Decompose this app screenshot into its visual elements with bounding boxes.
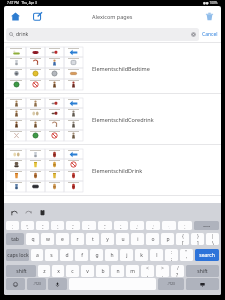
staticText: k	[140, 252, 143, 259]
button[interactable]: y	[101, 233, 114, 245]
staticText: w	[46, 236, 50, 243]
staticText: ElementschildCoredrink	[92, 116, 154, 123]
button[interactable]: &	[98, 221, 112, 230]
button[interactable]: .?123	[158, 278, 184, 290]
button[interactable]: Edit	[30, 9, 45, 24]
staticText: b	[101, 268, 105, 275]
staticText: s	[50, 252, 53, 259]
button[interactable]: p	[161, 233, 174, 245]
staticText: [	[182, 240, 184, 245]
button[interactable]: d	[60, 249, 73, 261]
button[interactable]: h	[105, 249, 118, 261]
staticText: <	[146, 265, 149, 272]
button[interactable]: search	[195, 249, 219, 261]
staticText: f	[81, 252, 83, 259]
button[interactable]: Cancel	[202, 31, 218, 38]
button[interactable]: +	[178, 221, 192, 230]
button[interactable]: delete	[194, 221, 219, 230]
staticText: 3	[42, 226, 44, 229]
button[interactable]: @	[21, 221, 34, 230]
button[interactable]: j	[120, 249, 133, 261]
button[interactable]: r	[71, 233, 84, 245]
button[interactable]: (	[130, 221, 144, 230]
staticText: j	[126, 252, 128, 259]
button[interactable]: u	[116, 233, 129, 245]
button[interactable]: %	[66, 221, 80, 230]
staticText: a	[36, 252, 39, 259]
button[interactable]: a	[31, 249, 43, 261]
staticText: search	[199, 252, 215, 259]
button[interactable]: s	[45, 249, 58, 261]
button[interactable]: i	[131, 233, 144, 245]
button[interactable]: .?123	[27, 278, 46, 290]
staticText: %	[72, 223, 74, 226]
button[interactable]: o	[146, 233, 159, 245]
button[interactable]: #	[36, 221, 49, 230]
staticText: u	[121, 236, 125, 243]
staticText: 2	[27, 226, 29, 229]
button[interactable]: ElementschildDrink	[4, 145, 221, 195]
button[interactable]: m	[126, 265, 139, 277]
staticText: m	[130, 268, 135, 275]
staticText: 6	[88, 226, 90, 229]
button[interactable]: shift	[6, 265, 36, 277]
button[interactable]: >	[156, 265, 169, 277]
staticText: p	[166, 236, 170, 243]
button[interactable]	[186, 278, 219, 290]
button[interactable]: shift	[186, 265, 219, 277]
button[interactable]: ElementschildBedtime	[4, 43, 221, 93]
staticText: ;	[171, 256, 173, 261]
button[interactable]: w	[41, 233, 54, 245]
button[interactable]: x	[52, 265, 64, 277]
staticText: delete	[203, 224, 210, 227]
staticText: ?	[176, 272, 179, 277]
button[interactable]	[6, 278, 25, 290]
button[interactable]: b	[96, 265, 109, 277]
button[interactable]: /	[171, 265, 184, 277]
button[interactable]: !	[6, 221, 19, 230]
button[interactable]: Paste	[38, 208, 47, 217]
staticText: Cancel	[202, 31, 218, 38]
staticText: 5	[72, 226, 74, 229]
button[interactable]: *	[114, 221, 128, 230]
button[interactable]: Home	[8, 9, 23, 24]
button[interactable]: v	[81, 265, 94, 277]
button[interactable]: <	[141, 265, 154, 277]
button[interactable]: :	[165, 249, 178, 261]
button[interactable]: {	[176, 233, 189, 245]
staticText: +	[184, 223, 186, 226]
button[interactable]: n	[111, 265, 124, 277]
button[interactable]: k	[135, 249, 148, 261]
button[interactable]: caps lock	[6, 249, 29, 261]
button[interactable]: tab	[6, 233, 24, 245]
button[interactable]: Redo	[24, 208, 33, 217]
button[interactable]: Undo	[10, 208, 19, 217]
staticText: {	[182, 233, 184, 240]
button[interactable]: z	[38, 265, 50, 277]
button[interactable]: )	[146, 221, 160, 230]
button[interactable]: f	[75, 249, 88, 261]
button[interactable]: c	[66, 265, 79, 277]
staticText: -	[169, 226, 170, 229]
staticText: i	[137, 236, 139, 243]
button[interactable]: $	[51, 221, 64, 230]
button[interactable]: Delete	[202, 9, 217, 24]
button[interactable]: g	[90, 249, 103, 261]
button[interactable]: t	[86, 233, 99, 245]
button[interactable]: drink	[6, 28, 199, 41]
button[interactable]: ^	[82, 221, 96, 230]
staticText: q	[31, 236, 35, 243]
button[interactable]: |	[206, 233, 219, 245]
button[interactable]: "	[180, 249, 193, 261]
button[interactable]: _	[162, 221, 176, 230]
button[interactable]: q	[26, 233, 39, 245]
button[interactable]: Clear text	[191, 32, 196, 37]
button[interactable]: ElementschildCoredrink	[4, 94, 221, 144]
button[interactable]: e	[56, 233, 69, 245]
button[interactable]: }	[191, 233, 204, 245]
staticText: drink	[16, 31, 29, 38]
button[interactable]: l	[150, 249, 163, 261]
button[interactable]	[48, 278, 67, 290]
